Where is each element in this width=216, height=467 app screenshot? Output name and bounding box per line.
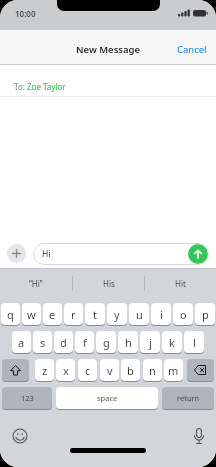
- button[interactable]: return: [162, 387, 214, 409]
- button[interactable]: x: [56, 359, 75, 381]
- staticText: His: [103, 278, 115, 289]
- staticText: d: [60, 335, 67, 350]
- staticText: j: [149, 335, 152, 350]
- staticText: l: [193, 335, 196, 350]
- button[interactable]: s: [33, 331, 52, 353]
- button[interactable]: [2, 359, 29, 381]
- button[interactable]: z: [35, 359, 54, 381]
- staticText: space: [97, 393, 118, 403]
- button[interactable]: “Hi”: [0, 269, 72, 297]
- staticText: s: [40, 335, 46, 350]
- staticText: To:: [14, 81, 27, 92]
- staticText: o: [180, 307, 187, 322]
- button[interactable]: His: [73, 269, 144, 297]
- button[interactable]: n: [143, 359, 162, 381]
- staticText: r: [71, 307, 76, 322]
- staticText: h: [125, 335, 132, 350]
- staticText: Zoe Taylor: [27, 81, 66, 92]
- staticText: u: [136, 307, 143, 322]
- button[interactable]: o: [173, 303, 193, 325]
- button[interactable]: a: [12, 331, 31, 353]
- staticText: 10:00: [15, 8, 36, 19]
- staticText: m: [168, 363, 179, 378]
- button[interactable]: [188, 244, 208, 264]
- button[interactable]: h: [118, 331, 138, 353]
- button[interactable]: j: [140, 331, 160, 353]
- button[interactable]: 123: [2, 387, 52, 409]
- button[interactable]: k: [162, 331, 182, 353]
- button[interactable]: i: [151, 303, 171, 325]
- button[interactable]: p: [195, 303, 215, 325]
- staticText: 123: [21, 393, 34, 403]
- staticText: i: [160, 307, 163, 322]
- button[interactable]: v: [100, 359, 119, 381]
- staticText: v: [107, 363, 113, 378]
- staticText: b: [127, 363, 134, 378]
- button[interactable]: space: [56, 387, 158, 409]
- button[interactable]: d: [54, 331, 73, 353]
- button[interactable]: q: [1, 303, 20, 325]
- staticText: New Message: [76, 43, 141, 56]
- button[interactable]: w: [22, 303, 41, 325]
- staticText: z: [42, 363, 48, 378]
- button[interactable]: t: [85, 303, 105, 325]
- staticText: p: [202, 307, 209, 322]
- staticText: return: [177, 393, 200, 403]
- button[interactable]: To:: [0, 65, 216, 97]
- staticText: w: [27, 307, 36, 322]
- staticText: a: [18, 335, 25, 350]
- button[interactable]: c: [78, 359, 97, 381]
- button[interactable]: [192, 428, 206, 447]
- button[interactable]: Cancel: [177, 30, 207, 65]
- button[interactable]: [187, 359, 214, 381]
- staticText: k: [169, 335, 175, 350]
- staticText: g: [103, 335, 110, 350]
- button[interactable]: Hit: [145, 269, 216, 297]
- button[interactable]: b: [121, 359, 140, 381]
- staticText: x: [63, 363, 69, 378]
- staticText: Hit: [175, 278, 186, 289]
- staticText: Cancel: [177, 43, 207, 56]
- button[interactable]: m: [164, 359, 183, 381]
- staticText: f: [83, 335, 87, 350]
- button[interactable]: f: [75, 331, 94, 353]
- staticText: e: [49, 307, 56, 322]
- button[interactable]: g: [96, 331, 116, 353]
- staticText: c: [85, 363, 91, 378]
- staticText: Hi: [42, 248, 51, 260]
- button[interactable]: [12, 428, 28, 444]
- button[interactable]: [7, 244, 26, 263]
- staticText: n: [149, 363, 156, 378]
- staticText: t: [93, 307, 97, 322]
- staticText: y: [114, 307, 120, 322]
- staticText: q: [7, 307, 14, 322]
- button[interactable]: r: [64, 303, 83, 325]
- button[interactable]: u: [129, 303, 149, 325]
- button[interactable]: e: [43, 303, 62, 325]
- button[interactable]: l: [184, 331, 204, 353]
- button[interactable]: Hi: [33, 243, 209, 265]
- staticText: “Hi”: [29, 278, 43, 289]
- button[interactable]: y: [107, 303, 127, 325]
